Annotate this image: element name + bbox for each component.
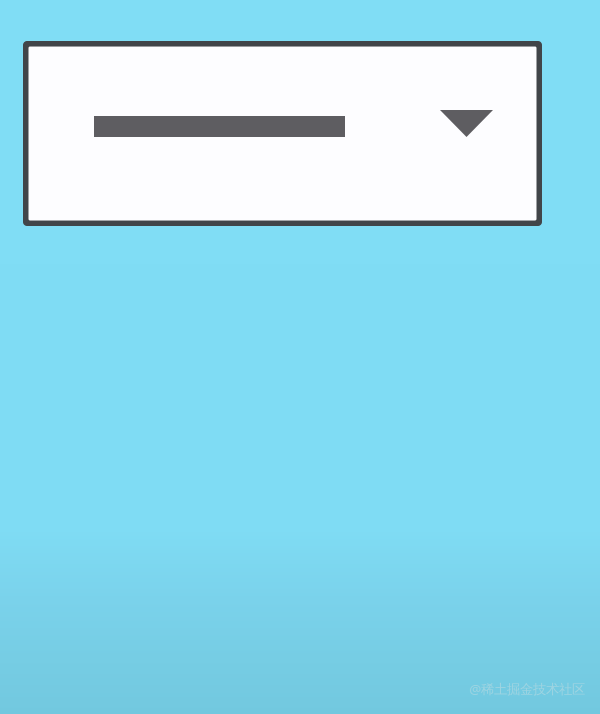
- button[interactable]: Select: [23, 41, 542, 226]
- staticText: @稀土掘金技术社区: [469, 680, 585, 698]
